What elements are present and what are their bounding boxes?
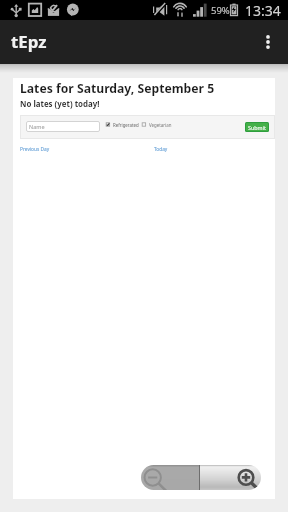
staticText: Lates for Saturday, September 5	[20, 80, 215, 97]
staticText: Vegetarian	[149, 122, 172, 128]
staticText: 59%	[211, 4, 230, 17]
button[interactable]: Today	[154, 146, 168, 153]
staticText: No lates (yet) today!	[20, 99, 100, 110]
button[interactable]: More options	[248, 22, 288, 62]
button[interactable]: Submit	[246, 123, 268, 131]
button[interactable]: Zoom out	[141, 465, 199, 490]
staticText: Name	[29, 123, 45, 130]
staticText: tEpz	[11, 30, 47, 53]
button[interactable]: Vegetarian	[142, 121, 172, 128]
staticText: Today	[154, 146, 168, 153]
staticText: Submit	[248, 124, 266, 131]
staticText: 13:34	[245, 1, 281, 20]
staticText: Refrigerated	[113, 122, 139, 128]
button[interactable]: Zoom in	[200, 465, 261, 490]
button[interactable]: Refrigerated	[106, 121, 139, 128]
staticText: Previous Day	[20, 146, 50, 153]
button[interactable]: Name	[26, 121, 100, 132]
button[interactable]: Previous Day	[20, 146, 50, 153]
